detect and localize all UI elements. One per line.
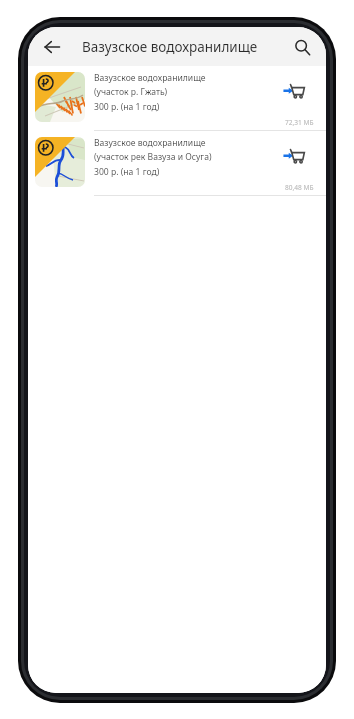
staticText: Вазузское водохранилище	[94, 72, 206, 84]
staticText: Вазузское водохранилище	[94, 137, 206, 149]
button[interactable]: Search	[286, 31, 318, 63]
button[interactable]: Вазузское водохранилище	[28, 131, 326, 196]
button[interactable]: Buy and download	[279, 77, 309, 107]
staticText: 300 р. (на 1 год)	[94, 166, 160, 178]
staticText: 72,31 МБ	[285, 118, 314, 127]
button[interactable]: Back	[36, 31, 68, 63]
staticText: 300 р. (на 1 год)	[94, 101, 160, 113]
button[interactable]: Buy and download	[279, 142, 309, 172]
staticText: (участок рек Вазуза и Осуга)	[94, 151, 212, 163]
staticText: Вазузское водохранилище	[82, 38, 258, 56]
staticText: (участок р. Гжать)	[94, 86, 168, 98]
button[interactable]: Вазузское водохранилище	[28, 66, 326, 131]
staticText: 80,48 МБ	[285, 183, 314, 192]
